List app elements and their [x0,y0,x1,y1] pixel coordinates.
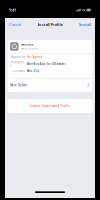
staticText: Cancel [9,22,21,27]
staticText: More Details [10,83,27,87]
staticText: Install Profile [37,22,62,27]
button[interactable]: Install [78,20,92,29]
staticText: Install [79,22,91,27]
button[interactable]: Cancel [8,20,22,29]
staticText: Remove Downloaded Profile [29,104,70,108]
staticText: Web Clip [27,69,40,73]
staticText: MoreBox Inc. [21,47,39,50]
button[interactable]: More Details [7,78,92,92]
staticText: Not Signed [27,55,43,59]
staticText: Contains [13,69,25,73]
staticText: MoreBox [21,43,33,46]
staticText: Signed by [11,55,25,59]
button[interactable]: Remove Downloaded Profile [7,99,92,113]
staticText: Description [10,60,25,67]
staticText: 9:41 [9,7,16,13]
staticText: MoreBox App for iOS devices [27,62,66,66]
